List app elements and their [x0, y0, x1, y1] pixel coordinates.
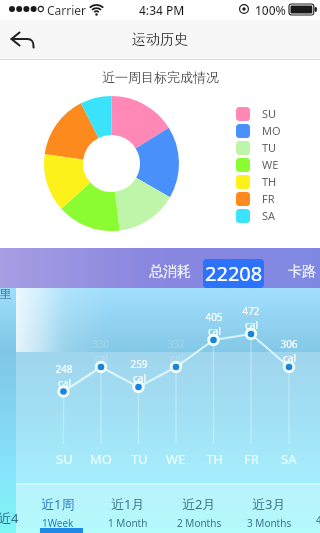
staticText: cal	[170, 351, 183, 365]
staticText: WE	[166, 450, 186, 468]
button[interactable]: SU	[236, 105, 296, 122]
button[interactable]: 近1周	[23, 495, 93, 533]
staticText: Carrier	[47, 2, 87, 18]
staticText: 1Week	[42, 516, 74, 530]
button[interactable]: 近3月	[234, 495, 304, 533]
button[interactable]: TH	[236, 173, 296, 190]
button[interactable]: FR	[236, 190, 296, 207]
staticText: 运动历史	[132, 31, 188, 49]
button[interactable]: SA	[236, 207, 296, 224]
staticText: 近1月	[111, 495, 145, 513]
staticText: 近3月	[252, 495, 286, 513]
staticText: SU	[56, 450, 73, 468]
staticText: 卡路	[288, 263, 316, 281]
staticText: TU	[131, 450, 148, 468]
staticText: WE	[262, 157, 279, 172]
staticText: 2 Months	[177, 516, 222, 530]
staticText: 472	[242, 304, 260, 318]
staticText: cal	[133, 371, 146, 385]
staticText: cal	[208, 324, 221, 338]
staticText: 近1周	[41, 495, 75, 513]
staticText: TH	[262, 174, 277, 189]
staticText: 近2月	[182, 495, 216, 513]
staticText: SU	[262, 106, 277, 121]
button[interactable]: MO	[236, 122, 296, 139]
staticText: SA	[281, 450, 297, 468]
staticText: cal	[58, 376, 71, 390]
staticText: cal	[245, 318, 258, 332]
staticText: 259	[130, 357, 148, 371]
staticText: 1 Month	[108, 516, 148, 530]
button[interactable]: 近1月	[93, 495, 163, 533]
staticText: MO	[90, 450, 112, 468]
staticText: 近4	[0, 509, 19, 527]
staticText: TH	[206, 450, 223, 468]
staticText: 近一周目标完成情况	[102, 69, 219, 85]
staticText: FR	[262, 191, 275, 206]
button[interactable]: 近2月	[164, 495, 234, 533]
staticText: SA	[262, 208, 276, 223]
staticText: 4:34 PM	[139, 2, 185, 18]
staticText: 总消耗	[149, 263, 191, 281]
staticText: cal	[283, 351, 296, 365]
staticText: 248	[55, 362, 73, 376]
button[interactable]: TU	[236, 139, 296, 156]
staticText: 306	[280, 337, 298, 351]
staticText: cal	[95, 351, 108, 365]
button[interactable]: Back	[4, 21, 42, 59]
staticText: 4	[316, 513, 320, 527]
staticText: 3 Months	[247, 516, 292, 530]
staticText: MO	[262, 123, 281, 138]
staticText: 330	[92, 337, 110, 351]
staticText: 22208	[205, 260, 263, 287]
button[interactable]: WE	[236, 156, 296, 173]
staticText: FR	[244, 450, 259, 468]
staticText: 100%	[255, 2, 286, 18]
staticText: 332	[167, 337, 185, 351]
staticText: 里	[0, 286, 11, 301]
staticText: 405	[205, 310, 223, 324]
staticText: TU	[262, 140, 277, 155]
